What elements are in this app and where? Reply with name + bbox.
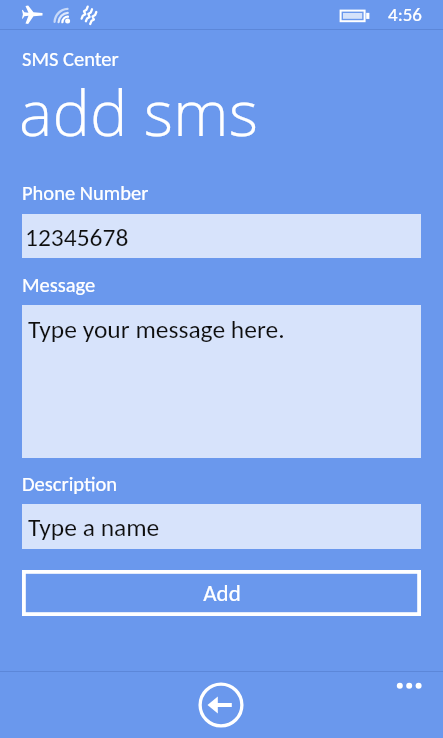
staticText: 12345678 (25, 222, 129, 253)
button[interactable]: 12345678 (22, 214, 421, 258)
staticText: 4:56 (388, 3, 422, 26)
staticText: Message (22, 272, 96, 297)
staticText: Description (22, 471, 118, 496)
staticText: SMS Center (22, 46, 119, 71)
staticText: Type your message here. (28, 314, 285, 345)
button[interactable]: Back (195, 679, 247, 731)
staticText: Add (203, 579, 241, 607)
button[interactable]: More options (388, 672, 434, 700)
button[interactable]: Add (22, 570, 421, 616)
staticText: Type a name (28, 512, 160, 543)
button[interactable]: Type a name (22, 504, 421, 549)
button[interactable]: Type your message here. (22, 305, 421, 458)
staticText: Phone Number (22, 180, 149, 205)
staticText: add sms (19, 69, 259, 155)
